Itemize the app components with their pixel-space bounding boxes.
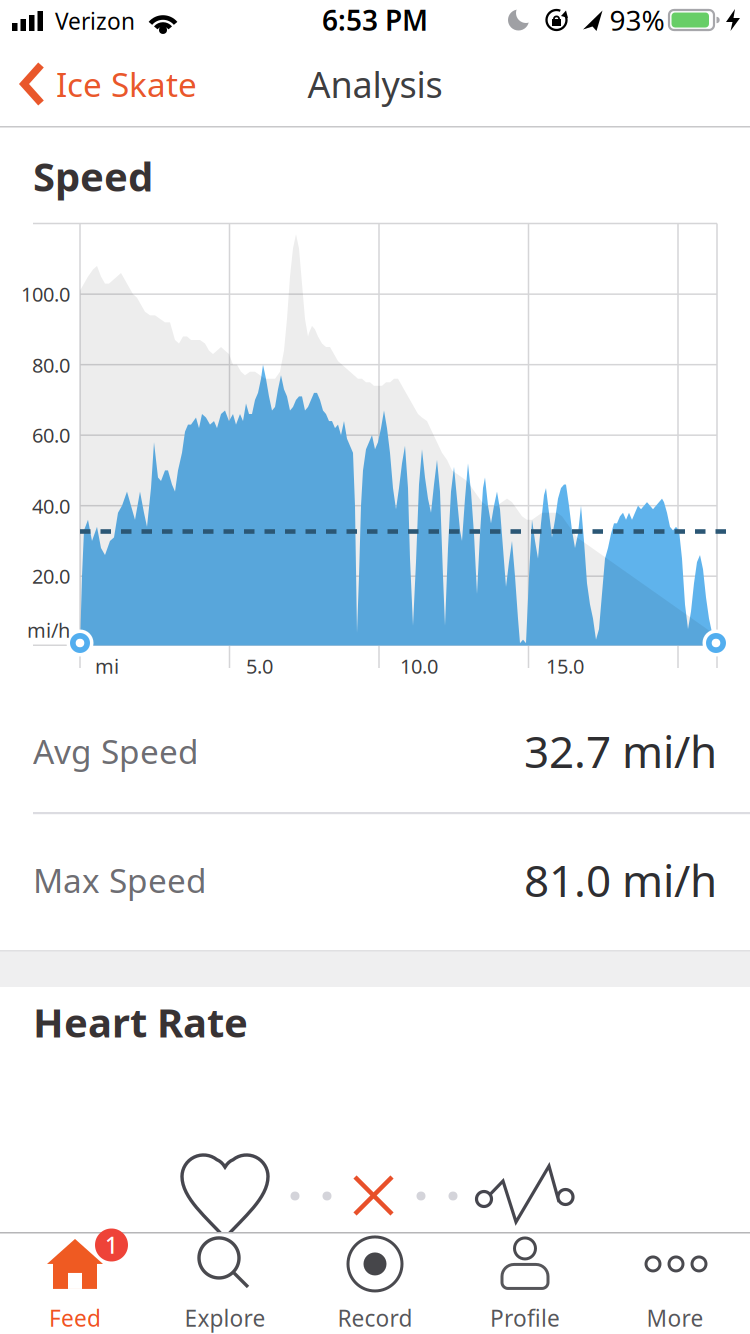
staticText: Record <box>337 1303 412 1333</box>
staticText: 10.0 <box>400 653 438 679</box>
staticText: mi <box>95 653 119 679</box>
staticText: Avg Speed <box>33 729 199 773</box>
staticText: Explore <box>184 1303 265 1333</box>
button[interactable]: Feed <box>0 1234 150 1334</box>
staticText: 20.0 <box>32 563 70 589</box>
button[interactable]: Profile <box>450 1234 600 1334</box>
staticText: 81.0 mi/h <box>524 851 717 909</box>
button[interactable]: More <box>600 1234 750 1334</box>
staticText: 60.0 <box>32 422 70 448</box>
button[interactable]: Back <box>20 40 320 128</box>
staticText: More <box>646 1303 703 1333</box>
staticText: 32.7 mi/h <box>524 722 717 780</box>
staticText: 40.0 <box>32 493 70 519</box>
button[interactable]: Explore <box>150 1234 300 1334</box>
staticText: 80.0 <box>32 352 70 378</box>
staticText: 93% <box>609 1 664 39</box>
staticText: Profile <box>490 1303 560 1333</box>
staticText: Ice Skate <box>56 62 197 106</box>
staticText: Verizon <box>55 6 135 36</box>
staticText: 15.0 <box>546 653 584 679</box>
staticText: 1 <box>105 1230 118 1260</box>
staticText: 5.0 <box>246 653 273 679</box>
staticText: 6:53 PM <box>322 1 428 39</box>
staticText: mi/h <box>27 617 70 643</box>
staticText: Heart Rate <box>33 995 248 1048</box>
staticText: Analysis <box>307 60 442 108</box>
staticText: Speed <box>33 149 153 202</box>
staticText: Feed <box>49 1303 101 1333</box>
button[interactable]: Record <box>300 1234 450 1334</box>
staticText: Max Speed <box>33 858 207 902</box>
staticText: 100.0 <box>21 281 70 307</box>
